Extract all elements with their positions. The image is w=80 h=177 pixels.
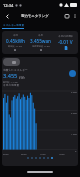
button[interactable]: 今月の請求額 [53, 31, 78, 54]
staticText: 18:00 [59, 153, 65, 156]
button[interactable]: Info [69, 70, 76, 77]
button[interactable]: Back [2, 11, 12, 21]
staticText: 昨日比 -11.4% [8, 45, 22, 48]
staticText: 今日 [13, 34, 18, 37]
staticText: 12:00 [40, 153, 46, 156]
button[interactable]: エネルギー使用量 [0, 21, 26, 27]
staticText: 12:34 [3, 3, 14, 8]
staticText: 1.000 [71, 133, 77, 136]
staticText: 3.455 [3, 72, 18, 80]
staticText: 0 [75, 150, 77, 153]
button[interactable]: 今月 [28, 31, 53, 54]
staticText: エネルギー使用量 [3, 23, 24, 26]
staticText: 2.000 [71, 112, 77, 115]
staticText: 06:00 [21, 153, 27, 156]
staticText: 電力モニタリング [21, 14, 49, 18]
staticText: 今日の使用量 [3, 83, 20, 86]
staticText: 3.455wan [30, 38, 51, 44]
staticText: 消費したエネルギー [3, 68, 28, 71]
staticText: 今月の請求額 [58, 35, 73, 38]
button[interactable]: 今日 [2, 31, 28, 54]
button[interactable] [3, 58, 20, 66]
staticText: 0.45kWh [6, 38, 25, 44]
button[interactable]: More options [71, 12, 79, 20]
staticText: 前日比 -11.4% [3, 81, 18, 84]
staticText: 前月同日比 +1.8% [32, 45, 50, 48]
staticText: -0.01 V [58, 39, 73, 45]
staticText: kWh [18, 76, 26, 80]
staticText: 00:00 [3, 153, 9, 156]
staticText: 今月 [38, 34, 43, 37]
button[interactable]: Calendar [62, 11, 71, 20]
staticText: 3.000 [71, 91, 77, 94]
